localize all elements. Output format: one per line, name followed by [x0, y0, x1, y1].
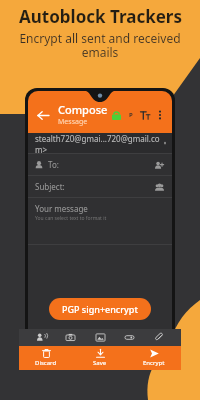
- button[interactable]: Save: [73, 346, 127, 370]
- staticText: To:: [48, 159, 59, 170]
- button[interactable]: PGP sign+encrypt: [49, 298, 151, 320]
- button[interactable]: More options: [153, 107, 167, 123]
- staticText: PGP sign+encrypt: [62, 303, 138, 315]
- button[interactable]: Signature: [124, 108, 137, 121]
- staticText: Message: [58, 117, 88, 127]
- button[interactable]: Add recipient: [153, 159, 165, 171]
- staticText: Autoblock Trackers: [19, 5, 182, 28]
- button[interactable]: stealth720@gmai...720@gmail.com>: [28, 133, 172, 153]
- button[interactable]: Discard: [19, 346, 73, 370]
- staticText: Discard: [35, 359, 57, 367]
- button[interactable]: Attach file: [152, 330, 167, 345]
- button[interactable]: Insert image: [93, 330, 108, 345]
- button[interactable]: Insert signature: [122, 330, 137, 345]
- staticText: Encrypt all sent and received emails: [6, 30, 194, 61]
- button[interactable]: Formatting: [137, 107, 153, 123]
- button[interactable]: Subject:: [28, 176, 172, 197]
- staticText: Subject:: [35, 181, 65, 192]
- staticText: stealth720@gmai...720@gmail.com>: [35, 133, 165, 153]
- staticText: Compose: [58, 102, 108, 117]
- button[interactable]: Back: [34, 106, 52, 124]
- staticText: You can select text to format it: [35, 215, 107, 222]
- button[interactable]: Your message: [28, 198, 172, 244]
- staticText: Your message: [35, 203, 88, 214]
- button[interactable]: To:: [28, 154, 172, 175]
- button[interactable]: Contacts: [153, 181, 165, 193]
- button[interactable]: Record voice: [34, 330, 49, 345]
- staticText: Save: [93, 359, 107, 367]
- staticText: P: [129, 111, 133, 119]
- button[interactable]: Encryption lock: [108, 107, 124, 123]
- staticText: Encrypt: [143, 359, 165, 367]
- button[interactable]: Camera: [63, 330, 78, 345]
- button[interactable]: Encrypt: [127, 346, 181, 370]
